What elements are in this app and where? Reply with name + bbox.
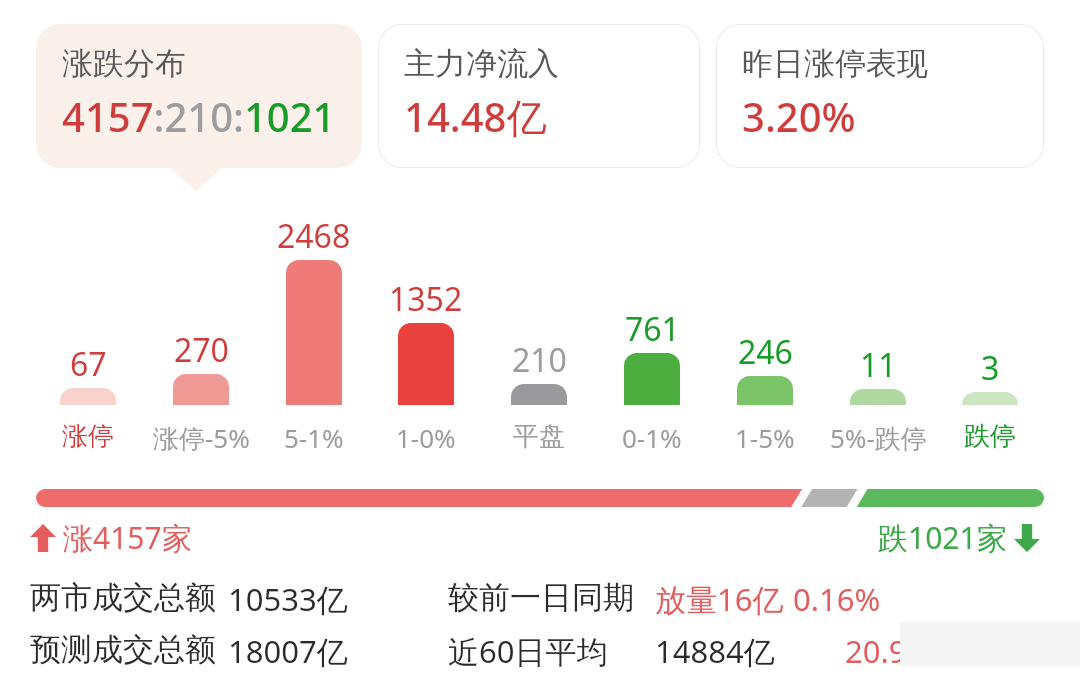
staticText: 2468 <box>277 214 351 258</box>
staticText: 270 <box>174 328 229 372</box>
staticText: 昨日涨停表现 <box>742 44 928 83</box>
staticText: 14884亿 <box>655 630 775 672</box>
button[interactable]: 昨日涨停表现 <box>716 24 1044 168</box>
staticText: 跌停 <box>964 420 1016 453</box>
staticText: 5-1% <box>284 420 344 455</box>
button[interactable] <box>624 353 680 405</box>
staticText: 210 <box>512 338 567 382</box>
staticText: 11 <box>860 343 897 387</box>
staticText: 1352 <box>389 277 463 321</box>
staticText: 3 <box>981 346 1000 390</box>
button[interactable] <box>36 489 1044 507</box>
button[interactable]: 跌1021家 <box>878 517 1040 558</box>
staticText: 761 <box>625 307 680 351</box>
staticText: 涨停-5% <box>153 420 250 456</box>
staticText: 平盘 <box>513 420 565 453</box>
button[interactable] <box>60 388 116 405</box>
staticText: 1-0% <box>396 420 456 455</box>
other: Falling stocks <box>1014 524 1040 552</box>
staticText: 246 <box>738 330 793 374</box>
button[interactable]: Rising stocks <box>30 517 192 558</box>
staticText: 4157:210:1021 <box>62 89 336 143</box>
button[interactable] <box>737 376 793 405</box>
staticText: 两市成交总额 <box>30 578 216 617</box>
button[interactable] <box>511 384 567 405</box>
staticText: 10533亿 <box>228 578 348 620</box>
staticText: 预测成交总额 <box>30 630 216 669</box>
staticText: 67 <box>70 342 107 386</box>
staticText: 放量16亿 <box>655 578 784 620</box>
button[interactable] <box>286 260 342 405</box>
staticText: 涨停 <box>62 420 114 453</box>
staticText: 近60日平均 <box>448 630 608 672</box>
staticText: 1-5% <box>735 420 795 455</box>
staticText: 涨4157家 <box>63 517 192 558</box>
button[interactable]: 主力净流入 <box>378 24 700 168</box>
staticText: 主力净流入 <box>404 44 559 83</box>
staticText: 18007亿 <box>228 630 348 672</box>
other: Rising stocks <box>30 524 56 552</box>
staticText: 涨跌分布 <box>62 44 186 83</box>
button[interactable] <box>398 323 454 405</box>
staticText: 14.48亿 <box>404 89 547 144</box>
button[interactable]: 涨跌分布 <box>36 24 362 168</box>
staticText: 较前一日同期 <box>448 578 634 617</box>
staticText: 0.16% <box>793 578 881 620</box>
button[interactable] <box>850 389 906 405</box>
staticText: 5%-跌停 <box>830 420 927 456</box>
staticText: 0-1% <box>622 420 682 455</box>
staticText: 3.20% <box>742 89 856 143</box>
staticText: 20.9 <box>845 630 907 672</box>
button[interactable] <box>962 392 1018 405</box>
button[interactable] <box>173 374 229 405</box>
staticText: 跌1021家 <box>878 517 1007 558</box>
